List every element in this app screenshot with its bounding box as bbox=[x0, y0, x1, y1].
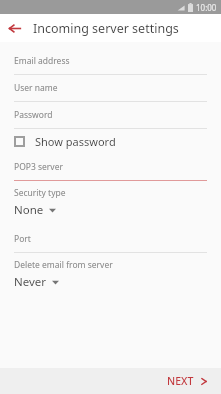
button[interactable]: POP3 server bbox=[0, 154, 221, 180]
staticText: Port bbox=[14, 233, 31, 245]
button[interactable]: Security type bbox=[0, 181, 221, 222]
staticText: Incoming server settings bbox=[33, 20, 179, 37]
staticText: Show password bbox=[35, 134, 116, 149]
staticText: User name bbox=[14, 82, 58, 94]
button[interactable]: Show password bbox=[0, 129, 221, 154]
staticText: NEXT bbox=[167, 374, 194, 388]
button[interactable]: Email address bbox=[0, 48, 221, 74]
staticText: Email address bbox=[14, 55, 70, 67]
button[interactable]: Delete email from server bbox=[0, 253, 221, 294]
staticText: Password bbox=[14, 109, 53, 121]
staticText: Delete email from server bbox=[14, 259, 113, 271]
button[interactable]: Port bbox=[0, 226, 221, 252]
button[interactable]: Back bbox=[0, 14, 28, 42]
staticText: Never bbox=[14, 274, 47, 290]
staticText: None bbox=[14, 202, 44, 218]
button[interactable]: NEXT bbox=[153, 369, 221, 393]
button[interactable]: Password bbox=[0, 102, 221, 128]
staticText: POP3 server bbox=[14, 161, 63, 173]
button[interactable]: User name bbox=[0, 75, 221, 101]
staticText: 10:00 bbox=[196, 2, 217, 13]
staticText: Security type bbox=[14, 187, 66, 199]
